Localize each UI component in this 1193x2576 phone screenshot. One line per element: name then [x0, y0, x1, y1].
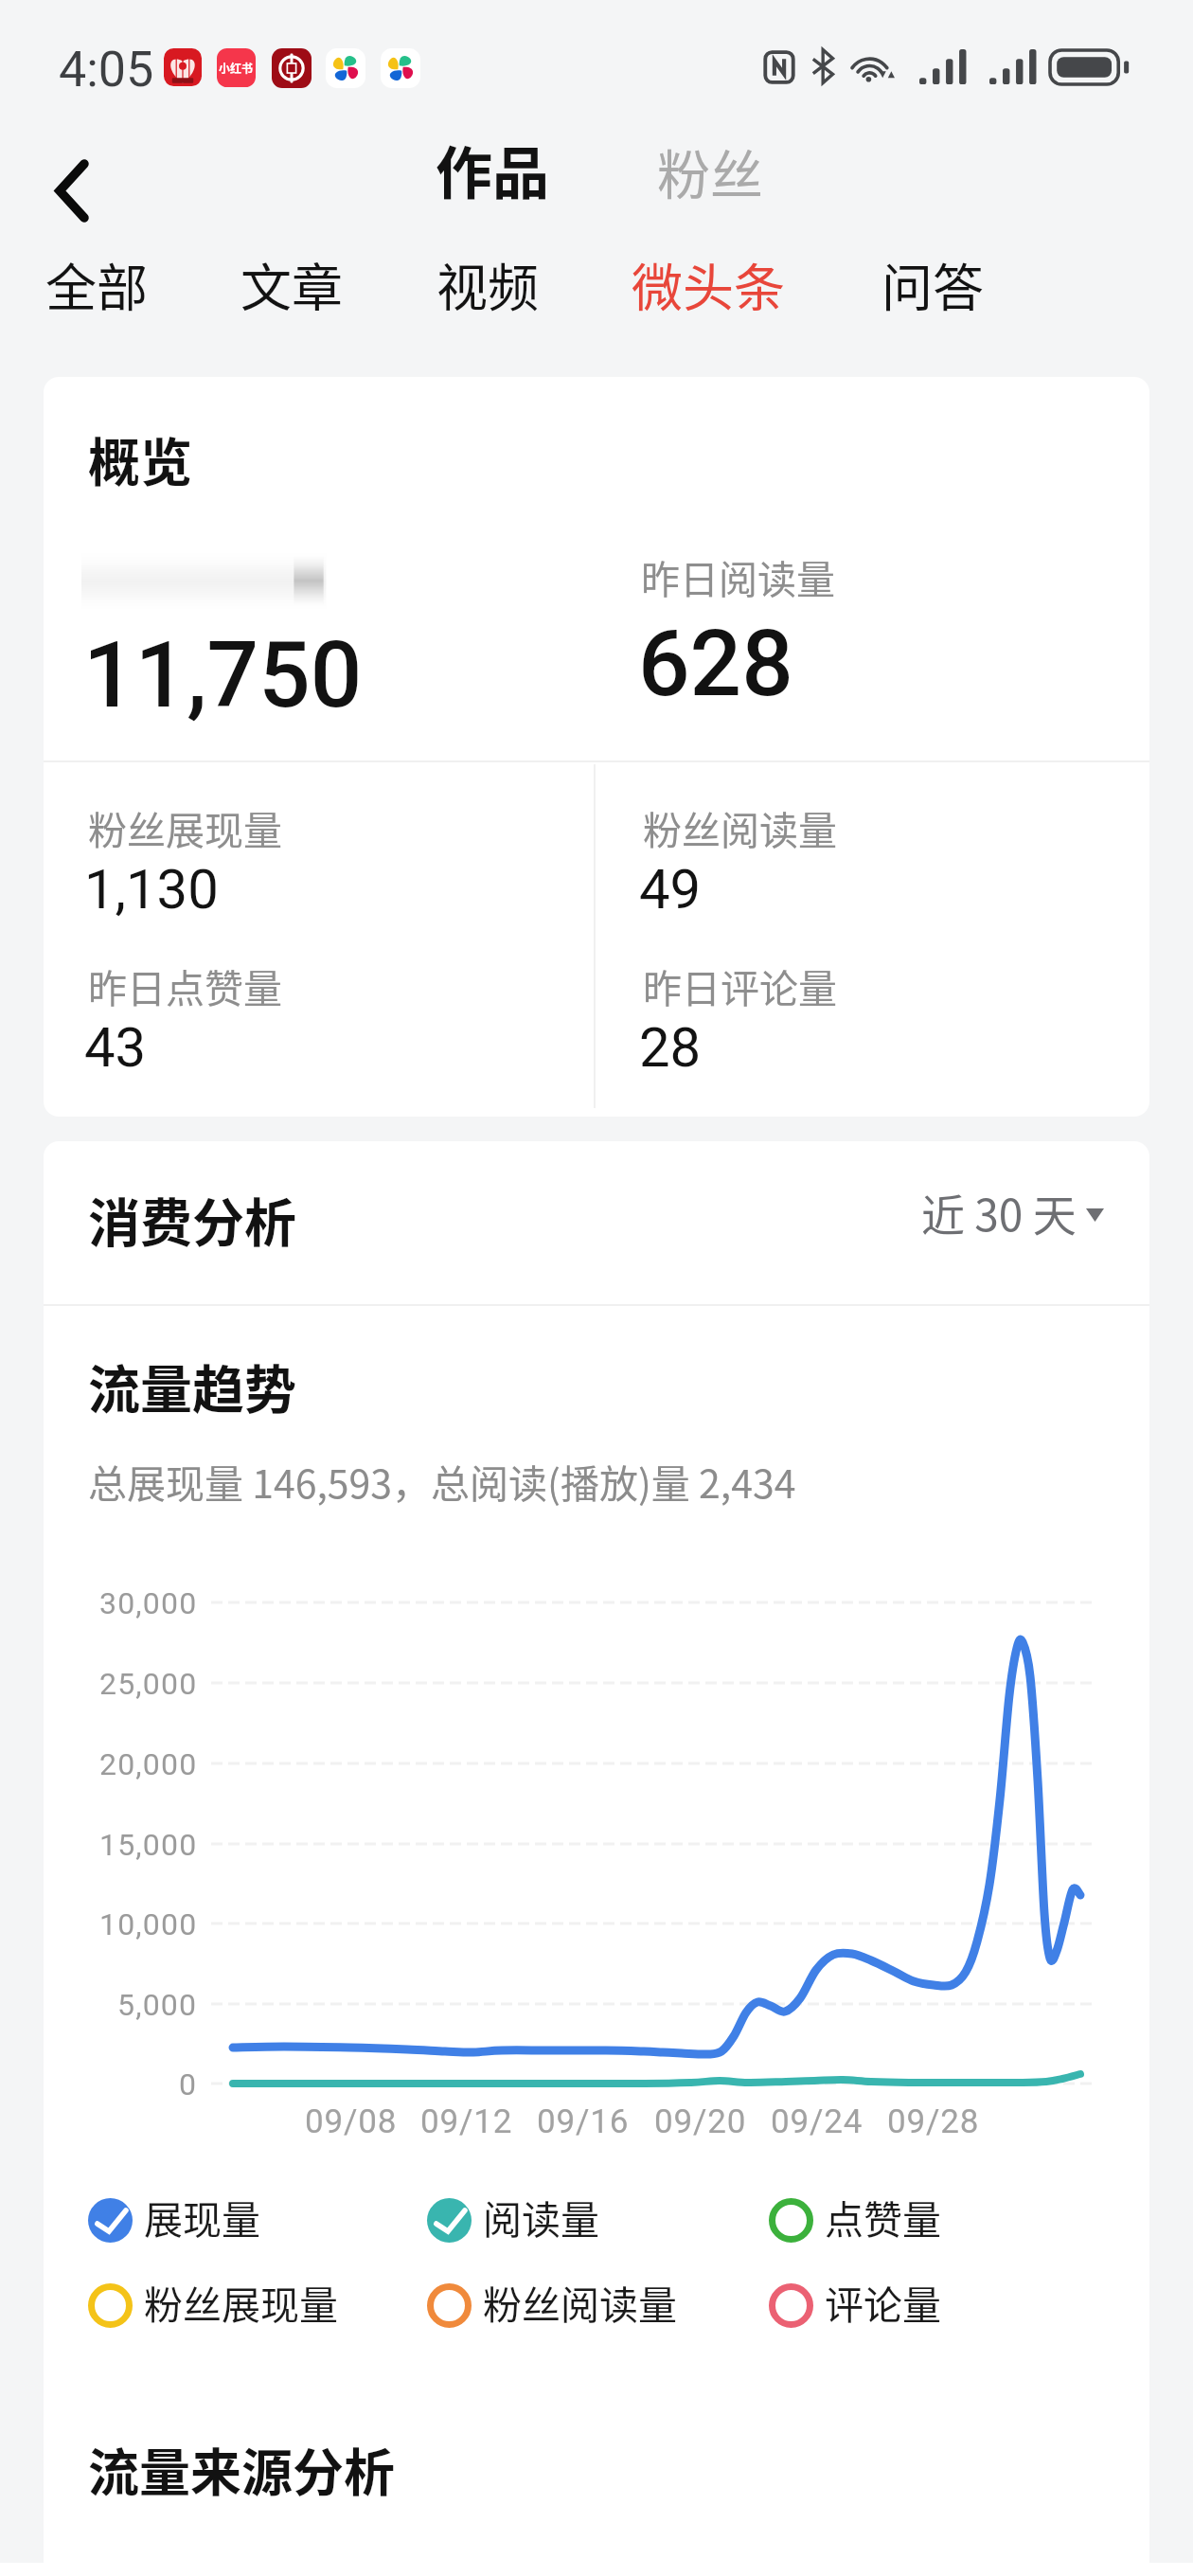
staticText: 昨日评论量 [643, 957, 837, 1013]
staticText: 作品 [436, 128, 549, 210]
staticText: 30,000 [99, 1585, 198, 1621]
staticText: 小红书 [219, 60, 254, 76]
staticText: 概览 [88, 420, 193, 496]
staticText: 09/08 [305, 2102, 398, 2141]
button[interactable]: 粉丝阅读量 [427, 2270, 677, 2340]
staticText: 628 [638, 611, 793, 718]
button[interactable]: 全部 [45, 247, 148, 321]
staticText: 粉丝 [657, 133, 763, 209]
button[interactable]: 评论量 [769, 2270, 941, 2340]
staticText: 09/20 [654, 2102, 747, 2141]
staticText: 问答 [881, 247, 984, 321]
button[interactable]: Back [19, 134, 123, 246]
staticText: 09/28 [887, 2102, 980, 2141]
staticText: 粉丝展现量 [144, 2274, 338, 2330]
staticText: 20,000 [99, 1746, 198, 1782]
staticText: 昨日点赞量 [88, 957, 282, 1013]
button[interactable]: 粉丝展现量 [88, 2270, 338, 2340]
button[interactable]: 点赞量 [769, 2185, 941, 2255]
staticText: 文章 [240, 247, 343, 321]
staticText: 09/16 [537, 2102, 630, 2141]
staticText: 粉丝阅读量 [483, 2274, 677, 2330]
staticText: 评论量 [825, 2274, 941, 2330]
staticText: 09/24 [771, 2102, 864, 2141]
staticText: 粉丝阅读量 [643, 799, 837, 855]
staticText: 43 [84, 1015, 147, 1080]
staticText: 粉丝展现量 [88, 799, 282, 855]
button[interactable]: 阅读量 [427, 2185, 599, 2255]
staticText: 0 [179, 2066, 198, 2102]
button[interactable]: 近 30 天 [921, 1181, 1104, 1244]
staticText: 15,000 [99, 1827, 198, 1863]
button[interactable]: 问答 [881, 247, 984, 321]
staticText: 28 [639, 1015, 702, 1080]
staticText: 25,000 [99, 1666, 198, 1702]
staticText: 总展现量 146,593，总阅读(播放)量 2,434 [88, 1453, 796, 1509]
staticText: 微头条 [632, 247, 785, 321]
staticText: 展现量 [144, 2189, 260, 2245]
staticText: 09/12 [420, 2102, 513, 2141]
button[interactable]: 视频 [436, 247, 539, 321]
button[interactable]: 粉丝 [657, 133, 763, 209]
staticText: 消费分析 [88, 1181, 297, 1257]
staticText: 4:05 [59, 41, 154, 98]
staticText: 流量趋势 [88, 1348, 297, 1423]
staticText: 阅读量 [483, 2189, 599, 2245]
staticText: 5,000 [117, 1987, 198, 2023]
button[interactable]: 微头条 [632, 247, 785, 321]
staticText: 点赞量 [825, 2189, 941, 2245]
staticText: 近 30 天 [921, 1181, 1077, 1244]
button[interactable]: 作品 [436, 128, 549, 210]
staticText: 昨日阅读量 [641, 548, 835, 604]
staticText: 11,750 [83, 622, 363, 729]
staticText: 49 [639, 857, 702, 921]
staticText: 1,130 [84, 857, 219, 921]
button[interactable]: 文章 [240, 247, 343, 321]
staticText: 10,000 [99, 1906, 198, 1942]
staticText: 视频 [436, 247, 539, 321]
staticText: 全部 [45, 247, 148, 321]
staticText: 流量来源分析 [88, 2432, 395, 2506]
button[interactable]: 展现量 [88, 2185, 260, 2255]
